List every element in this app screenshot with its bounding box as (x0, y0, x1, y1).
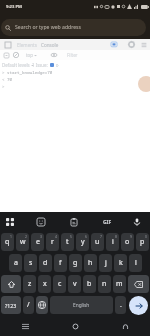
button[interactable]: p (136, 233, 149, 251)
button[interactable]: Back (100, 316, 150, 336)
button[interactable]: d (39, 254, 52, 272)
button[interactable]: y (76, 233, 89, 251)
staticText: Default levels (2, 62, 30, 68)
staticText: x (43, 279, 47, 289)
staticText: s (29, 258, 33, 268)
button[interactable]: Elements (16, 39, 37, 50)
staticText: u (95, 237, 100, 247)
button[interactable]: h (84, 254, 97, 272)
staticText: k (119, 258, 123, 268)
button[interactable]: s (24, 254, 37, 272)
staticText: z (28, 279, 32, 289)
button[interactable]: Issues (108, 39, 119, 50)
staticText: c (58, 279, 62, 289)
button[interactable]: top (24, 50, 39, 60)
staticText: o (125, 237, 130, 247)
staticText: 1 (10, 234, 12, 239)
staticText: Elements (17, 42, 37, 48)
button[interactable]: t (61, 233, 74, 251)
button[interactable]: Voice input (128, 212, 146, 232)
button[interactable]: g (69, 254, 82, 272)
button[interactable]: Filter (65, 50, 80, 60)
button[interactable]: c (53, 275, 66, 293)
button[interactable]: j (99, 254, 112, 272)
button[interactable]: l (129, 254, 142, 272)
button[interactable]: f (54, 254, 67, 272)
button[interactable]: Go (129, 296, 148, 315)
staticText: 1 Issue: (32, 62, 48, 68)
button[interactable]: Stickers (32, 212, 50, 232)
staticText: m (116, 279, 123, 289)
staticText: GIF (103, 219, 112, 226)
staticText: 5 (70, 234, 72, 239)
button[interactable]: k (114, 254, 127, 272)
staticText: l (135, 258, 137, 268)
staticText: English (73, 302, 90, 309)
staticText: p (140, 237, 145, 247)
button[interactable]: / (23, 296, 34, 314)
button[interactable]: Default levels (1, 61, 35, 69)
button[interactable]: Search or type web address (1, 19, 146, 36)
staticText: 6 (85, 234, 87, 239)
staticText: Search or type web address (15, 24, 81, 31)
button[interactable]: Home (50, 316, 100, 336)
button[interactable]: Backspace (128, 275, 149, 293)
button[interactable]: a (9, 254, 22, 272)
button[interactable]: q (1, 233, 14, 251)
button[interactable]: Recents (0, 316, 50, 336)
button[interactable]: e (31, 233, 44, 251)
button[interactable]: No entry (11, 50, 21, 60)
staticText: 3 (40, 234, 42, 239)
staticText: a (14, 258, 18, 268)
staticText: Filter (67, 52, 78, 58)
staticText: 2 (25, 234, 27, 239)
button[interactable]: u (91, 233, 104, 251)
staticText: 8 (115, 234, 117, 239)
staticText: v (73, 279, 77, 289)
staticText: 7 (100, 234, 102, 239)
button[interactable]: Keyboard menu (1, 212, 19, 232)
staticText: Console (41, 42, 59, 48)
staticText: top (26, 52, 33, 58)
button[interactable]: More options (138, 39, 149, 50)
button[interactable]: n (98, 275, 111, 293)
button[interactable]: Shift (1, 275, 21, 293)
button[interactable]: Console (39, 39, 61, 50)
button[interactable]: Settings (126, 39, 137, 50)
staticText: i (112, 237, 114, 247)
button[interactable]: z (23, 275, 36, 293)
button[interactable]: m (113, 275, 126, 293)
staticText: 9 (130, 234, 132, 239)
staticText: start_knowledge=70 (7, 70, 53, 76)
button[interactable]: . (115, 296, 126, 314)
staticText: ?123 (5, 302, 17, 309)
staticText: t (66, 237, 69, 247)
button[interactable]: i (106, 233, 119, 251)
button[interactable]: o (121, 233, 134, 251)
button[interactable]: b (83, 275, 96, 293)
button[interactable]: Inspect element (2, 39, 13, 50)
staticText: e (36, 237, 40, 247)
button[interactable]: r (46, 233, 59, 251)
button[interactable]: English (50, 296, 113, 314)
staticText: q (5, 237, 10, 247)
button[interactable]: Profile (138, 76, 150, 92)
button[interactable]: w (16, 233, 29, 251)
staticText: g (73, 258, 78, 268)
staticText: / (27, 300, 30, 310)
button[interactable]: Filter settings (48, 50, 59, 60)
button[interactable]: ?123 (1, 296, 21, 314)
button[interactable]: x (38, 275, 51, 293)
staticText: . (120, 300, 122, 310)
button[interactable]: Clipboard (65, 212, 83, 232)
button[interactable]: Change language (36, 296, 48, 314)
button[interactable]: Clear console (1, 50, 11, 60)
staticText: r (51, 237, 54, 247)
button[interactable]: 1 Issue: (31, 61, 60, 69)
staticText: > (2, 84, 5, 90)
button[interactable]: GIF (98, 212, 116, 232)
button[interactable]: v (68, 275, 81, 293)
staticText: 0 (145, 234, 147, 239)
staticText: h (88, 258, 93, 268)
staticText: j (105, 258, 107, 268)
